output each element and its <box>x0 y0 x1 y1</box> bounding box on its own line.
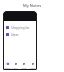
staticText: Tags <box>21 66 27 69</box>
button[interactable]: Lists <box>11 61 19 70</box>
staticText: My Notes <box>23 3 42 8</box>
staticText: Lists <box>12 66 18 69</box>
staticText: Shopping list <box>11 26 30 30</box>
staticText: Home <box>3 66 11 69</box>
button[interactable]: Home <box>3 61 11 70</box>
button[interactable]: Shopping list <box>3 25 37 30</box>
staticText: More <box>29 66 36 69</box>
button[interactable]: Tags <box>19 61 28 70</box>
staticText: Ideas <box>11 33 19 37</box>
button[interactable]: More <box>28 61 37 70</box>
button[interactable]: Ideas <box>3 32 37 37</box>
